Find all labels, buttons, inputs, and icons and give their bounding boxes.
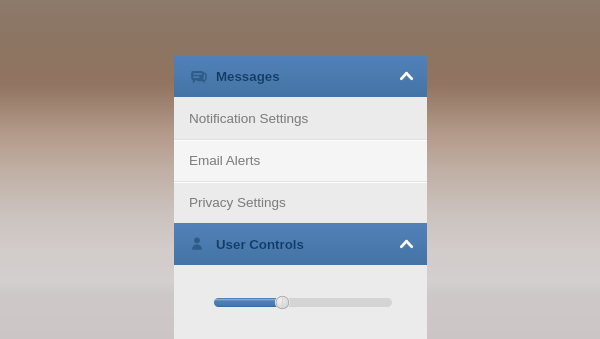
staticText: Notification Settings [189, 111, 309, 126]
button[interactable]: Email Alerts [174, 139, 427, 181]
staticText: Messages [216, 69, 280, 84]
button[interactable]: Notification Settings [174, 97, 427, 139]
staticText: Privacy Settings [189, 195, 286, 210]
staticText: User Controls [216, 237, 304, 252]
button[interactable]: Privacy Settings [174, 181, 427, 223]
staticText: Email Alerts [189, 153, 261, 168]
other: Collapse [400, 72, 413, 80]
button[interactable]: User Controls [174, 223, 427, 265]
button[interactable]: Messages [174, 55, 427, 97]
other: Collapse [400, 240, 413, 248]
